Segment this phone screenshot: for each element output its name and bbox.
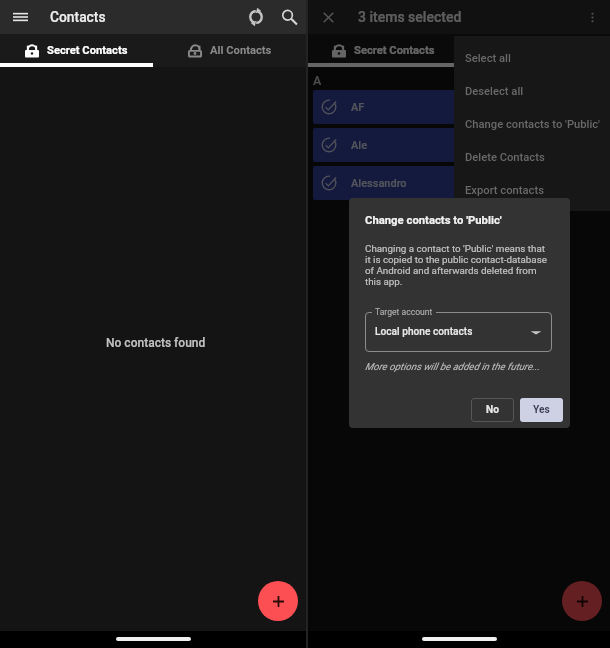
staticText: 3 items selected bbox=[358, 9, 462, 25]
staticText: Deselect all bbox=[465, 85, 524, 98]
staticText: Change contacts to 'Public' bbox=[465, 118, 601, 131]
button[interactable]: Select all bbox=[454, 42, 610, 75]
button[interactable]: No bbox=[471, 398, 514, 422]
staticText: Ale bbox=[351, 139, 368, 152]
button[interactable]: Secret Contacts bbox=[0, 34, 153, 67]
staticText: No bbox=[486, 404, 499, 416]
button[interactable]: Sync bbox=[242, 3, 270, 31]
button[interactable]: Ale bbox=[313, 128, 605, 162]
button[interactable]: Add contact bbox=[562, 581, 602, 621]
staticText: A bbox=[313, 73, 322, 88]
button[interactable]: More options bbox=[578, 3, 606, 31]
staticText: Changing a contact to 'Public' means tha… bbox=[365, 243, 549, 287]
button[interactable]: Change contacts to 'Public' bbox=[454, 108, 610, 141]
staticText: Target account bbox=[375, 307, 433, 317]
staticText: Alessandro bbox=[351, 177, 407, 190]
staticText: Select all bbox=[465, 52, 511, 65]
staticText: Contacts bbox=[50, 9, 106, 25]
button[interactable]: All Contacts bbox=[153, 34, 306, 67]
button[interactable]: Export contacts bbox=[454, 174, 610, 207]
button[interactable]: AF bbox=[313, 90, 605, 124]
button[interactable]: Alessandro bbox=[313, 166, 605, 200]
button[interactable]: Secret Contacts bbox=[308, 34, 459, 67]
staticText: Export contacts bbox=[465, 184, 544, 197]
staticText: AF bbox=[351, 101, 365, 114]
button[interactable]: Search bbox=[275, 3, 303, 31]
button[interactable]: Deselect all bbox=[454, 75, 610, 108]
staticText: Local phone contacts bbox=[375, 326, 473, 338]
staticText: Yes bbox=[533, 404, 550, 416]
button[interactable]: Add contact bbox=[258, 581, 298, 621]
button[interactable]: Open navigation drawer bbox=[6, 3, 34, 31]
staticText: Secret Contacts bbox=[47, 44, 128, 57]
button[interactable]: Close selection bbox=[314, 3, 342, 31]
staticText: Delete Contacts bbox=[465, 151, 545, 164]
staticText: No contacts found bbox=[106, 336, 206, 350]
staticText: More options will be added in the future… bbox=[365, 361, 540, 372]
button[interactable]: Delete Contacts bbox=[454, 141, 610, 174]
button[interactable]: Yes bbox=[520, 398, 563, 422]
staticText: All Contacts bbox=[210, 44, 272, 57]
staticText: Secret Contacts bbox=[354, 44, 435, 57]
staticText: Change contacts to 'Public' bbox=[365, 214, 502, 227]
button[interactable]: Local phone contacts bbox=[365, 312, 552, 352]
